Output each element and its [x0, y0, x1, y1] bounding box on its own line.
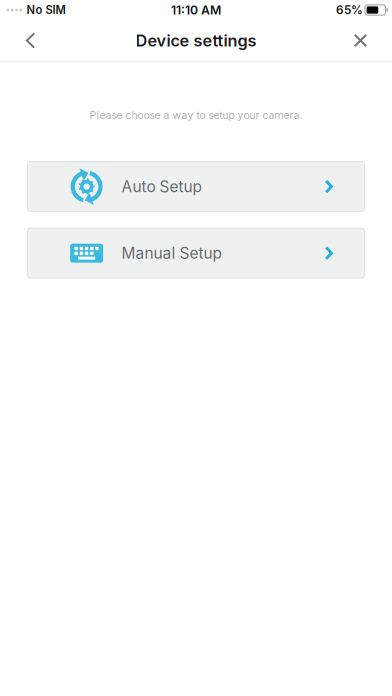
staticText: 11:10 AM	[171, 3, 221, 17]
staticText: Device settings	[135, 31, 256, 50]
button[interactable]: Close	[336, 20, 384, 61]
staticText: No SIM	[27, 3, 66, 17]
staticText: Please choose a way to setup your camera…	[89, 109, 302, 122]
button[interactable]: Auto Setup	[27, 162, 365, 212]
button[interactable]: Back	[6, 20, 54, 61]
staticText: Manual Setup	[122, 244, 222, 262]
button[interactable]: Manual Setup	[27, 228, 365, 278]
staticText: 65%	[336, 3, 363, 17]
staticText: Auto Setup	[122, 177, 202, 196]
